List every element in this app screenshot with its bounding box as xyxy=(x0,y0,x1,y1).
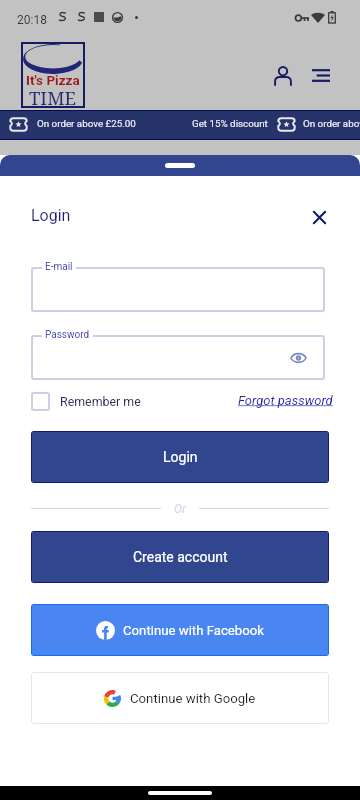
staticText: Get 15% discount xyxy=(192,118,268,129)
staticText: On order above £25.00 xyxy=(303,118,360,129)
staticText: Continue with Facebook xyxy=(123,623,264,638)
button[interactable]: Create account xyxy=(32,532,328,582)
staticText: Create account xyxy=(133,549,228,565)
button[interactable]: Show password xyxy=(287,347,309,369)
button[interactable]: Drag handle xyxy=(0,155,360,176)
staticText: Continue with Google xyxy=(130,691,256,706)
button[interactable]: E-mail xyxy=(31,267,325,312)
staticText: Login xyxy=(31,206,71,225)
staticText: Password xyxy=(45,329,90,341)
button[interactable]: Menu xyxy=(309,63,333,87)
button[interactable]: Continue with Facebook xyxy=(32,605,328,655)
staticText: Or xyxy=(174,502,186,516)
button[interactable]: Forgot password xyxy=(238,393,333,408)
button[interactable]: Password xyxy=(31,335,325,380)
button[interactable]: Continue with Google xyxy=(31,672,329,724)
staticText: TIME xyxy=(29,85,77,110)
button[interactable]: Remember me xyxy=(31,392,141,411)
staticText: On order above £25.00 xyxy=(37,118,136,129)
staticText: Remember me xyxy=(60,394,141,409)
button[interactable]: It's Pizza Time xyxy=(21,42,85,108)
staticText: 20:18 xyxy=(17,13,47,27)
staticText: Login xyxy=(163,449,198,465)
button[interactable]: Account xyxy=(271,63,295,87)
staticText: It's Pizza xyxy=(26,72,80,88)
button[interactable]: Close xyxy=(308,206,331,229)
staticText: E-mail xyxy=(45,261,73,273)
button[interactable]: Login xyxy=(32,432,328,482)
staticText: Forgot password xyxy=(238,393,333,408)
